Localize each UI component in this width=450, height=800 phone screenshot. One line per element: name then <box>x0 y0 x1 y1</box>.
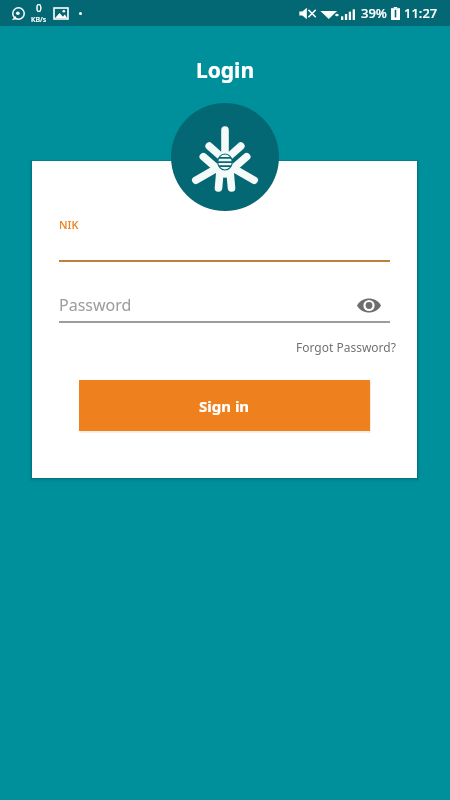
button[interactable]: Show password <box>355 291 383 319</box>
button[interactable]: Sign in <box>79 380 370 431</box>
staticText: KB/s <box>31 15 47 25</box>
staticText: Login <box>0 56 450 85</box>
button[interactable]: Forgot Password? <box>290 333 402 361</box>
button[interactable]: Password <box>59 288 390 322</box>
staticText: 0 <box>36 1 42 15</box>
staticText: Forgot Password? <box>296 339 396 355</box>
button[interactable]: NIK <box>59 211 390 262</box>
staticText: Sign in <box>199 396 250 416</box>
staticText: Password <box>59 294 132 316</box>
staticText: 39% <box>361 4 387 22</box>
staticText: 11:27 <box>404 4 438 22</box>
staticText: NIK <box>59 217 79 232</box>
